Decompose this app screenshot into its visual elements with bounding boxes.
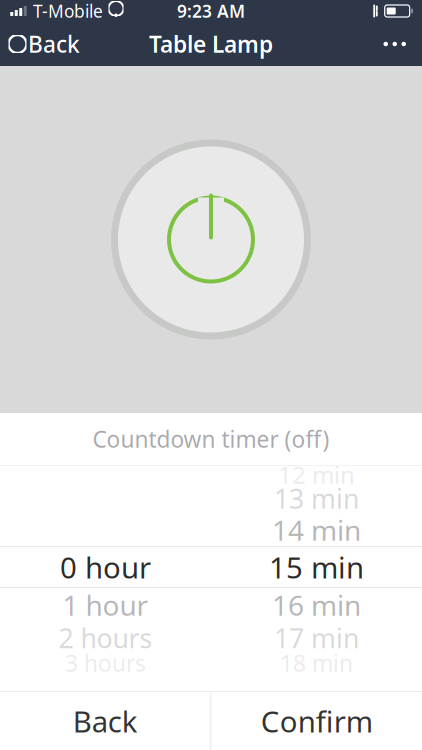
staticText: Table Lamp xyxy=(149,29,273,59)
button[interactable]: Back xyxy=(0,22,93,66)
staticText: 17 min xyxy=(274,620,359,656)
staticText: Countdown timer (off) xyxy=(92,424,329,454)
staticText: 1 hour xyxy=(62,586,148,624)
staticText: 3 hours xyxy=(65,648,146,678)
staticText: Back xyxy=(73,701,138,740)
staticText: 9:23 AM xyxy=(177,0,245,22)
button[interactable]: More options xyxy=(367,22,422,66)
staticText: 18 min xyxy=(280,648,353,678)
staticText: 15 min xyxy=(269,547,364,586)
staticText: 0 hour xyxy=(60,547,151,586)
staticText: 12 min xyxy=(278,459,355,490)
staticText: 14 min xyxy=(272,511,361,549)
staticText: Confirm xyxy=(261,701,373,740)
button[interactable]: Power toggle xyxy=(111,139,311,339)
staticText: T-Mobile xyxy=(33,0,103,22)
staticText: 13 min xyxy=(274,481,359,516)
staticText: Back xyxy=(28,29,80,59)
staticText: 2 hours xyxy=(58,620,152,656)
button[interactable]: Back xyxy=(0,692,210,750)
staticText: 16 min xyxy=(272,586,361,624)
button[interactable]: Confirm xyxy=(211,692,422,750)
